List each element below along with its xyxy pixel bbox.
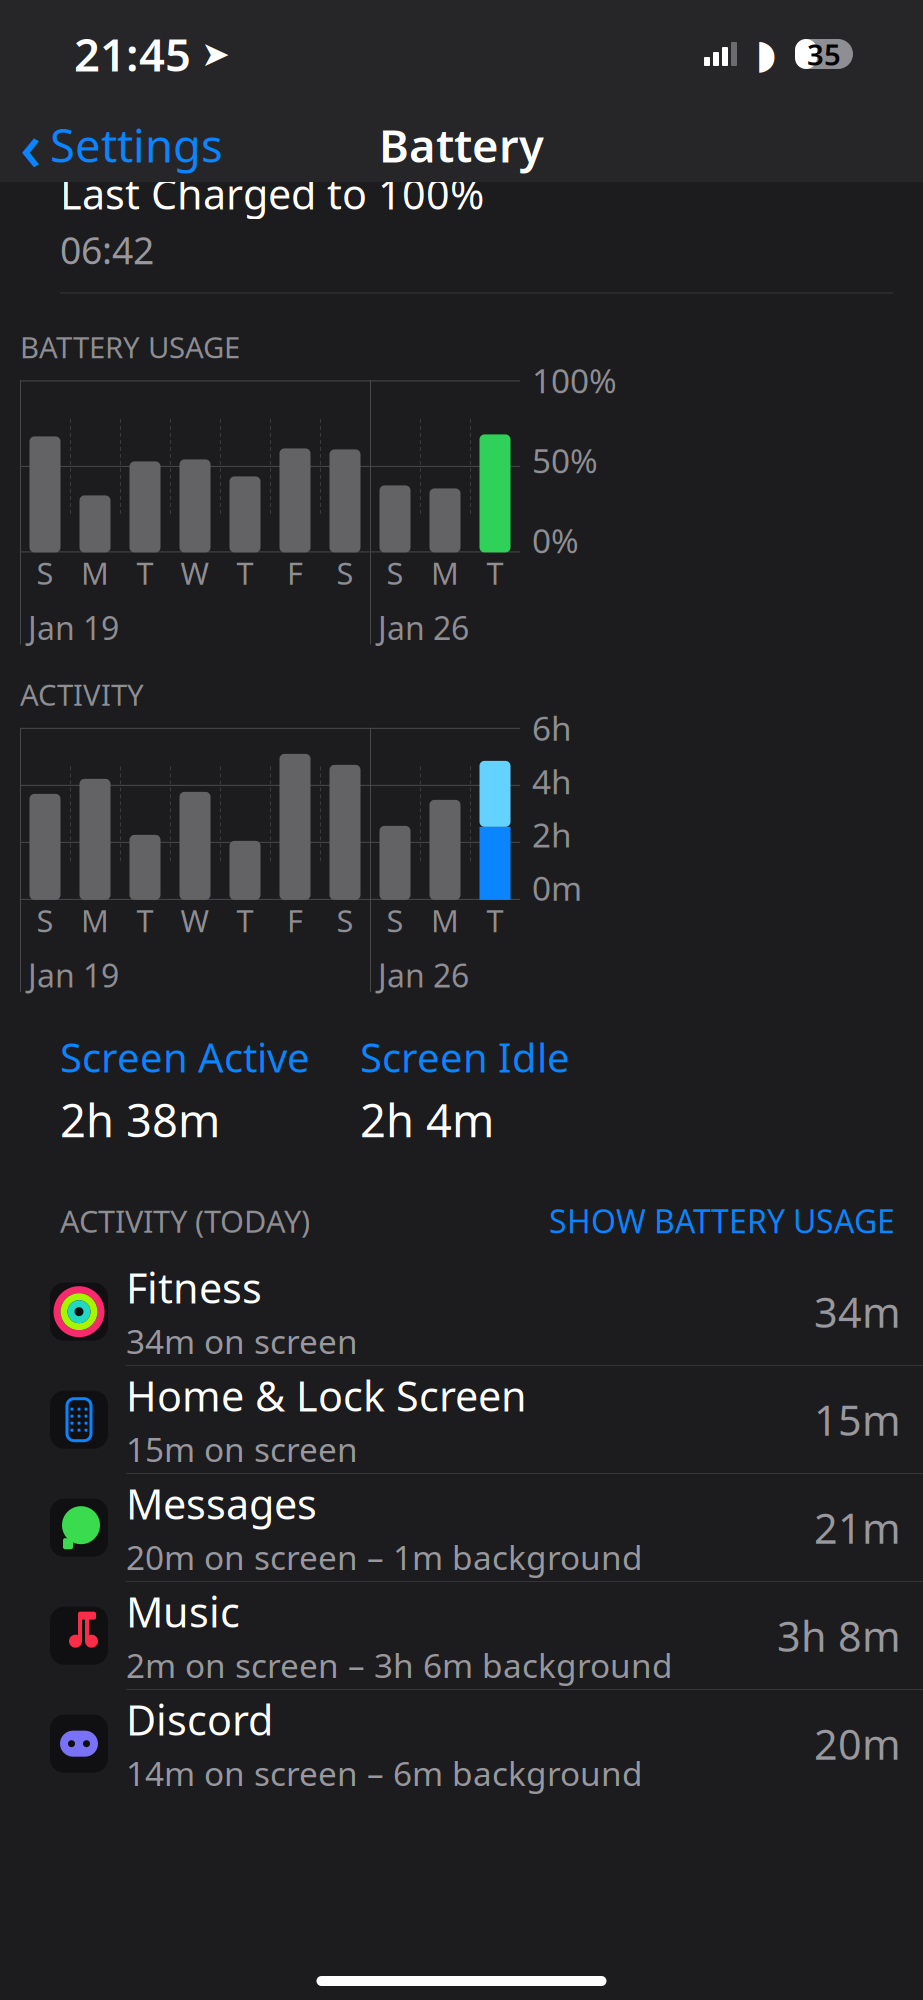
staticText: W [180, 552, 209, 593]
button[interactable]: Discord [30, 1690, 923, 1797]
staticText: SHOW BATTERY USAGE [549, 1200, 895, 1242]
staticText: ACTIVITY (TODAY) [60, 1201, 310, 1241]
staticText: S [36, 900, 53, 941]
staticText: 14m on screen – 6m background [126, 1751, 643, 1795]
staticText: S [336, 552, 353, 593]
staticText: 20m on screen – 1m background [126, 1535, 643, 1579]
staticText: T [486, 552, 503, 593]
staticText: 2h 38m [60, 1089, 220, 1150]
staticText: Jan 19 [28, 954, 119, 996]
staticText: W [180, 900, 209, 941]
staticText: M [431, 552, 459, 593]
staticText: 0m [532, 866, 582, 910]
staticText: T [236, 900, 253, 941]
staticText: 35 [807, 34, 841, 73]
button[interactable]: ‹ [0, 95, 223, 195]
staticText: ACTIVITY [20, 675, 144, 714]
staticText: 21:45 [74, 24, 191, 84]
staticText: 15m [814, 1392, 901, 1447]
staticText: Home & Lock Screen [126, 1368, 527, 1423]
staticText: F [287, 900, 303, 941]
button[interactable]: Fitness [30, 1258, 923, 1366]
staticText: T [486, 900, 503, 941]
staticText: 2m on screen – 3h 6m background [126, 1643, 673, 1687]
staticText: Jan 26 [378, 606, 469, 649]
staticText: S [386, 900, 403, 941]
staticText: 21m [814, 1500, 901, 1555]
staticText: Settings [50, 115, 223, 175]
staticText: F [287, 552, 303, 593]
button[interactable]: Messages [30, 1474, 923, 1582]
staticText: Discord [126, 1692, 273, 1747]
button[interactable]: Music [30, 1582, 923, 1690]
staticText: BATTERY USAGE [20, 327, 240, 366]
staticText: S [36, 552, 53, 593]
staticText: 6h [532, 706, 572, 750]
staticText: ➤ [201, 34, 230, 74]
button[interactable]: Screen Idle [360, 1030, 660, 1150]
staticText: S [386, 552, 403, 593]
button[interactable]: Home & Lock Screen [30, 1366, 923, 1474]
staticText: Messages [126, 1476, 317, 1531]
staticText: S [336, 900, 353, 941]
staticText: ‹ [20, 101, 42, 189]
staticText: 3h 8m [777, 1608, 901, 1663]
staticText: Screen Active [60, 1030, 310, 1083]
staticText: Battery [379, 115, 544, 175]
staticText: 15m on screen [126, 1427, 358, 1471]
staticText: M [81, 900, 109, 941]
staticText: Fitness [126, 1260, 262, 1315]
staticText: T [136, 900, 153, 941]
staticText: 50% [532, 438, 598, 483]
staticText: 20m [814, 1716, 901, 1771]
staticText: Last Charged to 100% [60, 166, 484, 221]
staticText: ◗ [755, 31, 776, 77]
staticText: 4h [532, 759, 572, 803]
staticText: 34m on screen [126, 1319, 358, 1363]
staticText: Jan 19 [28, 606, 119, 649]
button[interactable]: SHOW BATTERY USAGE [549, 1200, 895, 1242]
staticText: T [236, 552, 253, 593]
staticText: Screen Idle [360, 1030, 570, 1083]
staticText: 2h 4m [360, 1089, 494, 1150]
button[interactable]: Screen Active [60, 1030, 360, 1150]
staticText: Music [126, 1584, 240, 1639]
staticText: 100% [532, 358, 617, 403]
staticText: T [136, 552, 153, 593]
staticText: 34m [814, 1284, 901, 1339]
staticText: Jan 26 [378, 954, 469, 996]
staticText: 0% [532, 518, 579, 563]
staticText: M [431, 900, 459, 941]
staticText: 06:42 [60, 225, 154, 274]
staticText: M [81, 552, 109, 593]
staticText: 2h [532, 812, 572, 857]
